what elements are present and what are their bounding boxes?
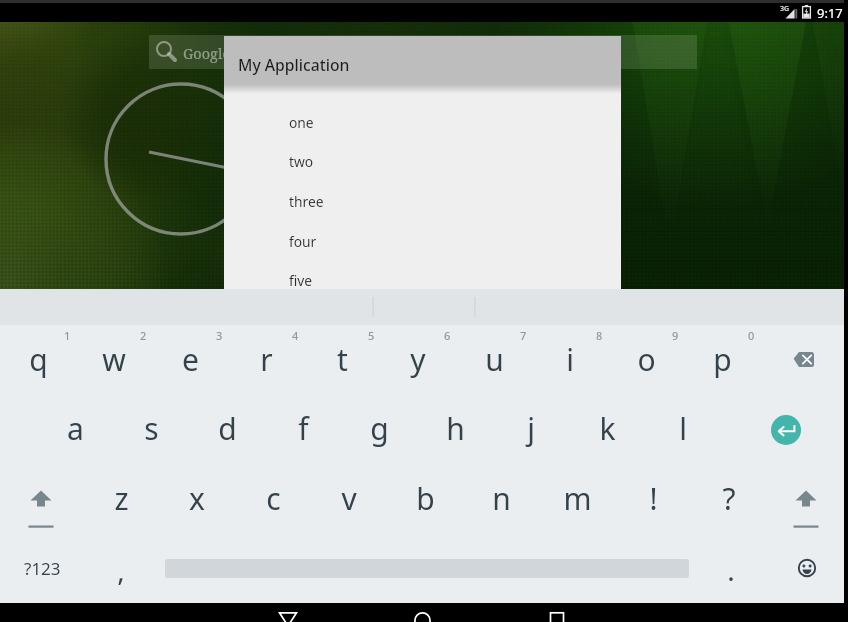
button[interactable]: Hide keyboard [260,603,316,622]
button[interactable]: Home [395,603,451,622]
button[interactable]: p [684,335,760,383]
button[interactable]: z [83,474,159,522]
button[interactable]: k [569,404,645,452]
staticText: l [679,408,687,449]
button[interactable]: t [304,335,380,383]
staticText: r [260,339,273,380]
button[interactable]: Enter [771,415,801,445]
button[interactable]: one [224,103,621,142]
staticText: 9:17 [817,4,843,22]
button[interactable]: . [693,546,769,594]
button[interactable]: five [224,261,621,300]
staticText: h [446,408,465,449]
button[interactable]: ? [691,474,767,522]
button[interactable]: b [387,474,463,522]
staticText: 8 [596,328,603,343]
button[interactable]: two [224,142,621,181]
button[interactable]: y [380,335,456,383]
button[interactable]: a [37,404,113,452]
staticText: 6 [444,328,451,343]
staticText: w [102,339,126,380]
button[interactable]: j [493,404,569,452]
staticText: 9 [672,328,679,343]
staticText: 0 [748,328,755,343]
staticText: four [289,232,317,251]
button[interactable]: w [76,335,152,383]
staticText: ? [722,478,736,519]
button[interactable]: v [311,474,387,522]
button[interactable]: m [539,474,615,522]
staticText: i [566,339,574,380]
staticText: n [492,478,511,519]
button[interactable]: Emoji [785,544,829,592]
staticText: k [599,408,616,449]
button[interactable]: d [189,404,265,452]
staticText: f [298,408,309,449]
staticText: s [144,408,159,449]
button[interactable]: Shift [3,476,79,532]
staticText: 4 [292,328,299,343]
staticText: two [289,152,314,171]
button[interactable]: x [159,474,235,522]
staticText: o [637,339,656,380]
button[interactable]: Shift [768,476,844,532]
button[interactable]: f [265,404,341,452]
staticText: . [727,551,735,589]
staticText: e [182,339,199,380]
button[interactable]: ?123 [4,544,80,592]
staticText: p [713,339,732,380]
staticText: My Application [238,54,350,75]
staticText: y [410,339,426,380]
staticText: a [67,408,84,449]
button[interactable]: h [417,404,493,452]
staticText: five [289,271,313,290]
staticText: 3 [216,328,223,343]
button[interactable]: e [152,335,228,383]
staticText: c [266,478,281,519]
staticText: Google [183,43,231,63]
staticText: t [337,339,348,380]
staticText: j [527,408,535,449]
staticText: ?123 [24,557,61,580]
button[interactable]: u [456,335,532,383]
button[interactable]: n [463,474,539,522]
staticText: 2 [140,328,147,343]
button[interactable]: o [608,335,684,383]
button[interactable]: l [645,404,721,452]
staticText: z [114,478,129,519]
button[interactable]: s [113,404,189,452]
staticText: one [289,113,314,132]
button[interactable]: four [224,222,621,261]
staticText: ! [649,478,658,519]
button[interactable]: q [0,335,76,383]
button[interactable]: Backspace [786,336,826,384]
staticText: q [29,339,48,380]
staticText: m [563,478,592,519]
staticText: 7 [520,328,527,343]
staticText: three [289,192,324,211]
button[interactable]: , [83,546,159,594]
button[interactable]: r [228,335,304,383]
button[interactable]: Google search [149,35,697,69]
staticText: d [218,408,237,449]
staticText: u [485,339,504,380]
staticText: , [117,551,125,589]
button[interactable]: c [235,474,311,522]
button[interactable]: Recent apps [529,603,585,622]
button[interactable]: g [341,404,417,452]
staticText: x [189,478,205,519]
staticText: 5 [368,328,375,343]
staticText: g [370,408,389,449]
staticText: 3G [780,4,790,14]
staticText: 1 [64,328,71,343]
staticText: b [416,478,435,519]
staticText: v [341,478,357,519]
button[interactable]: three [224,182,621,221]
button[interactable]: ! [615,474,691,522]
button[interactable]: i [532,335,608,383]
